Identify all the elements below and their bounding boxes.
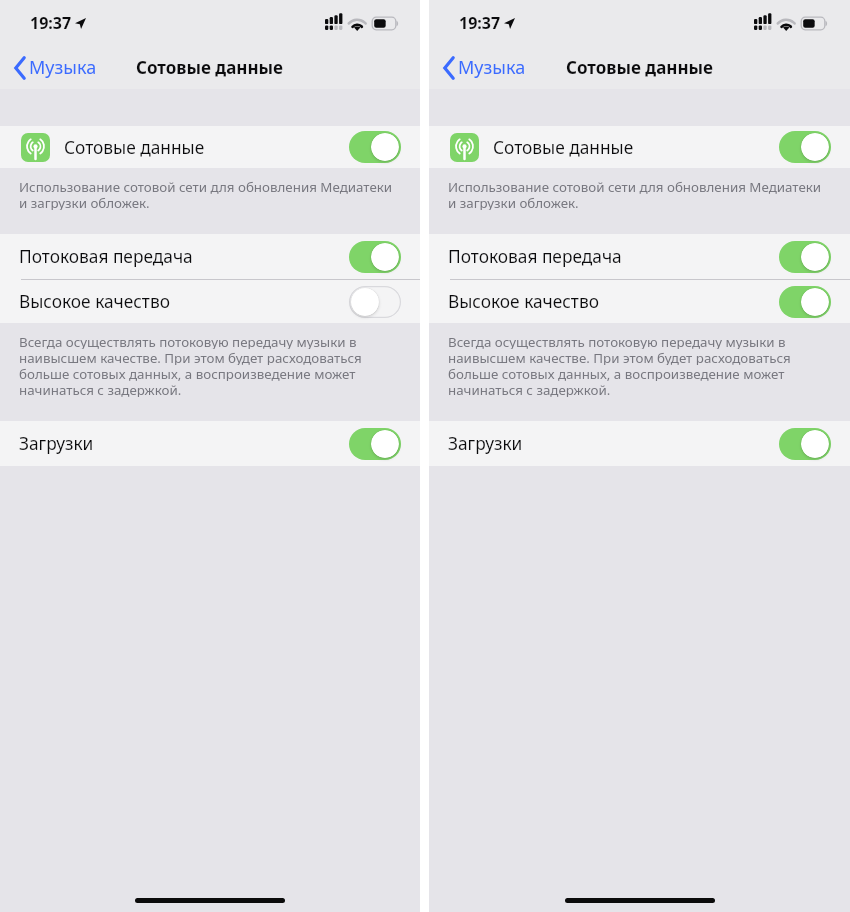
button[interactable]: Включено <box>779 286 831 318</box>
staticText: Сотовые данные <box>136 56 284 79</box>
staticText: наивысшем качестве. При этом будет расхо… <box>448 349 791 365</box>
staticText: Сотовые данные <box>493 136 634 160</box>
staticText: Загрузки <box>19 432 94 456</box>
staticText: Загрузки <box>448 432 523 456</box>
button[interactable]: Включено <box>349 131 401 163</box>
button[interactable]: Назад к Музыка <box>0 51 103 84</box>
button[interactable]: Высокое качество <box>0 280 420 323</box>
button[interactable]: Включено <box>349 428 401 460</box>
button[interactable]: Включено <box>779 131 831 163</box>
staticText: больше сотовых данных, а воспроизведение… <box>19 365 356 381</box>
button[interactable]: Высокое качество <box>429 280 850 323</box>
button[interactable]: Потоковая передача <box>429 234 850 279</box>
staticText: наивысшем качестве. При этом будет расхо… <box>19 349 362 365</box>
staticText: Сотовые данные <box>566 56 714 79</box>
staticText: больше сотовых данных, а воспроизведение… <box>448 365 785 381</box>
button[interactable]: Сотовые данные <box>0 126 420 168</box>
button[interactable]: Включено <box>779 428 831 460</box>
staticText: Сотовые данные <box>64 136 205 160</box>
staticText: Использование сотовой сети для обновлени… <box>448 178 822 194</box>
button[interactable]: Потоковая передача <box>0 234 420 279</box>
staticText: Музыка <box>458 55 526 80</box>
staticText: 19:37 <box>459 12 501 34</box>
staticText: и загрузки обложек. <box>448 194 579 210</box>
staticText: и загрузки обложек. <box>19 194 150 210</box>
staticText: Потоковая передача <box>448 245 622 269</box>
button[interactable]: Включено <box>779 241 831 273</box>
staticText: Потоковая передача <box>19 245 193 269</box>
staticText: Музыка <box>29 55 97 80</box>
button[interactable]: Включено <box>349 241 401 273</box>
staticText: Всегда осуществлять потоковую передачу м… <box>448 333 786 349</box>
staticText: начинаться с задержкой. <box>19 381 182 397</box>
staticText: 19:37 <box>30 12 72 34</box>
button[interactable]: Сотовые данные <box>429 126 850 168</box>
staticText: Всегда осуществлять потоковую передачу м… <box>19 333 357 349</box>
button[interactable]: Выключено <box>349 286 401 318</box>
staticText: Высокое качество <box>19 290 170 314</box>
button[interactable]: Загрузки <box>429 421 850 466</box>
staticText: Использование сотовой сети для обновлени… <box>19 178 393 194</box>
staticText: Высокое качество <box>448 290 599 314</box>
button[interactable]: Загрузки <box>0 421 420 466</box>
button[interactable]: Назад к Музыка <box>429 51 532 84</box>
staticText: начинаться с задержкой. <box>448 381 611 397</box>
